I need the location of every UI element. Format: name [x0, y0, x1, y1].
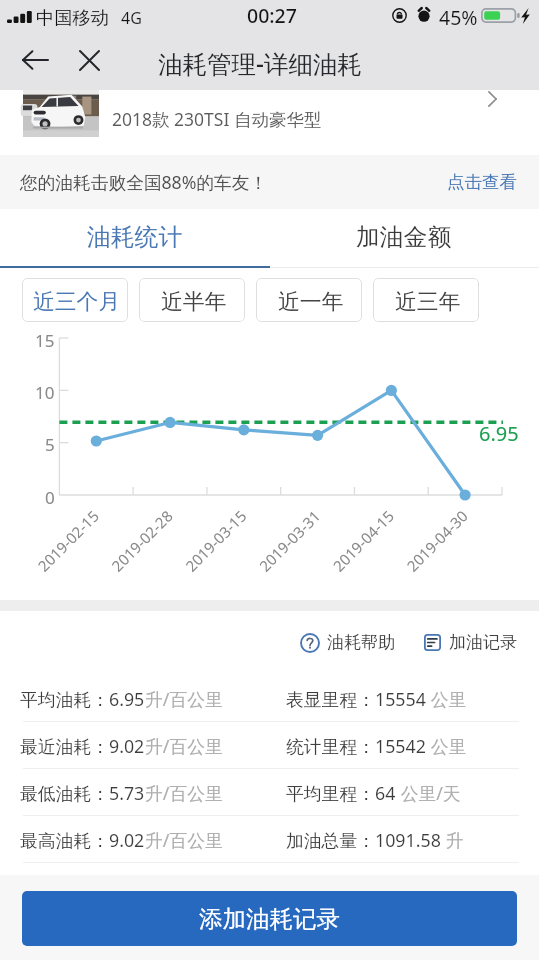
- staticText: 升/百公里: [145, 781, 223, 805]
- staticText: 平均里程：64: [286, 781, 396, 805]
- staticText: 加油金额: [356, 222, 452, 252]
- button[interactable]: 近三年: [373, 278, 479, 322]
- button[interactable]: 加油记录: [424, 624, 517, 661]
- staticText: 油耗帮助: [327, 632, 395, 653]
- staticText: 近三年: [395, 288, 461, 315]
- staticText: 公里/天: [396, 781, 461, 805]
- button[interactable]: Close: [65, 36, 113, 90]
- button[interactable]: 油耗统计: [0, 209, 269, 268]
- staticText: 您的油耗击败全国88%的车友！: [20, 170, 268, 194]
- staticText: 6.95: [479, 420, 519, 447]
- staticText: 升/百公里: [145, 828, 223, 852]
- staticText: 15: [35, 329, 55, 351]
- button[interactable]: 添加油耗记录: [22, 891, 517, 946]
- staticText: 公里: [426, 734, 467, 758]
- button[interactable]: 2018款 230TSI 自动豪华型: [0, 90, 539, 155]
- staticText: 5: [45, 433, 55, 455]
- staticText: 00:27: [247, 2, 297, 29]
- staticText: 近半年: [161, 288, 227, 315]
- staticText: 平均油耗：6.95: [20, 687, 145, 711]
- staticText: 最近油耗：9.02: [20, 734, 145, 758]
- button[interactable]: 您的油耗击败全国88%的车友！: [0, 155, 539, 209]
- staticText: 0: [45, 486, 55, 508]
- staticText: 加油记录: [449, 632, 517, 653]
- staticText: 公里: [426, 687, 467, 711]
- staticText: 10: [35, 381, 55, 403]
- staticText: 最高油耗：9.02: [20, 828, 145, 852]
- staticText: 统计里程：15542: [286, 734, 426, 758]
- staticText: 近三个月: [33, 288, 121, 315]
- staticText: 添加油耗记录: [199, 904, 340, 934]
- staticText: 加油总量：1091.58: [286, 828, 441, 852]
- staticText: 油耗管理-详细油耗: [158, 47, 362, 80]
- staticText: 点击查看: [447, 171, 517, 193]
- staticText: 升/百公里: [145, 687, 223, 711]
- staticText: 表显里程：15554: [286, 687, 426, 711]
- staticText: 2018款 230TSI 自动豪华型: [112, 107, 322, 131]
- staticText: 近一年: [278, 288, 344, 315]
- staticText: 升/百公里: [145, 734, 223, 758]
- button[interactable]: 近一年: [256, 278, 362, 322]
- staticText: 最低油耗：5.73: [20, 781, 145, 805]
- staticText: 4G: [121, 7, 142, 29]
- button[interactable]: 近三个月: [22, 278, 128, 322]
- button[interactable]: 加油金额: [269, 209, 539, 268]
- button[interactable]: 近半年: [139, 278, 245, 322]
- staticText: 油耗统计: [87, 222, 183, 252]
- staticText: 中国移动: [36, 6, 109, 29]
- staticText: 升: [441, 828, 464, 852]
- button[interactable]: Back: [11, 36, 59, 90]
- staticText: 45%: [439, 4, 478, 31]
- button[interactable]: 油耗帮助: [300, 624, 395, 661]
